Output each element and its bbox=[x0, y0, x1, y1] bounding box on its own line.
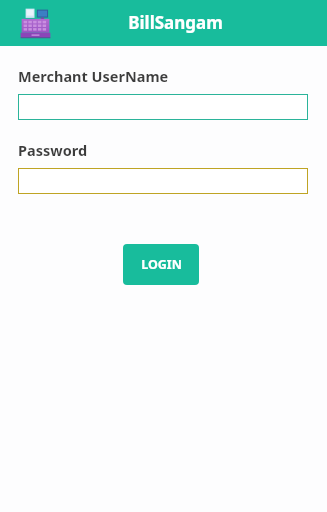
staticText: Merchant UserName bbox=[18, 66, 169, 86]
button[interactable] bbox=[18, 168, 308, 194]
staticText: LOGIN bbox=[141, 256, 182, 273]
staticText: Password bbox=[18, 140, 88, 160]
button[interactable] bbox=[18, 94, 308, 120]
button[interactable]: LOGIN bbox=[123, 244, 199, 285]
staticText: BillSangam bbox=[128, 11, 223, 34]
other: App logo bbox=[19, 7, 52, 40]
